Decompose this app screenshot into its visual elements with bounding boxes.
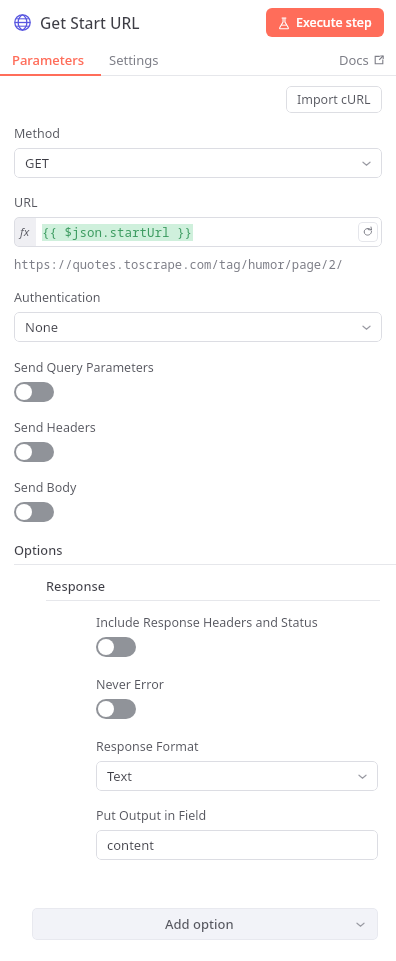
button[interactable]: Never Error — [96, 699, 136, 719]
staticText: Text — [107, 767, 132, 785]
staticText: Response — [46, 577, 105, 594]
staticText: fx — [20, 224, 30, 240]
button[interactable]: fx — [14, 217, 382, 247]
staticText: Include Response Headers and Status — [96, 614, 318, 631]
staticText: Authentication — [14, 289, 101, 306]
button[interactable]: GET — [14, 148, 382, 178]
staticText: Method — [14, 125, 60, 142]
button[interactable]: Docs — [327, 44, 396, 76]
button[interactable]: Text — [96, 761, 378, 791]
staticText: Import cURL — [297, 91, 371, 108]
staticText: Docs — [339, 51, 369, 69]
button[interactable]: Send Headers — [14, 442, 54, 462]
staticText: Put Output in Field — [96, 807, 207, 824]
button[interactable]: content — [96, 830, 378, 860]
staticText: Never Error — [96, 676, 164, 693]
staticText: Settings — [109, 51, 159, 69]
staticText: None — [25, 318, 59, 336]
button[interactable]: Import cURL — [286, 86, 382, 113]
staticText: Get Start URL — [40, 12, 140, 33]
staticText: GET — [25, 154, 49, 172]
staticText: https://quotes.toscrape.com/tag/humor/pa… — [14, 256, 344, 273]
button[interactable]: Execute step — [266, 8, 384, 37]
button[interactable]: Send Body — [14, 502, 54, 522]
staticText: Parameters — [12, 51, 85, 69]
button[interactable]: Include Response Headers and Status — [96, 637, 136, 657]
button[interactable]: Send Query Parameters — [14, 382, 54, 402]
staticText: {{ $json.startUrl }} — [42, 224, 193, 241]
button[interactable]: Settings — [97, 44, 171, 76]
button[interactable]: Parameters — [0, 44, 97, 76]
button[interactable]: None — [14, 312, 382, 342]
staticText: content — [107, 836, 154, 854]
button[interactable]: Add option — [32, 908, 378, 940]
staticText: Send Body — [14, 479, 77, 496]
staticText: Options — [14, 541, 63, 558]
staticText: Send Headers — [14, 419, 96, 436]
button[interactable]: Reset value — [358, 222, 378, 242]
staticText: Add option — [165, 915, 234, 933]
staticText: Send Query Parameters — [14, 359, 154, 376]
staticText: Execute step — [296, 14, 372, 31]
staticText: URL — [14, 194, 38, 211]
staticText: Response Format — [96, 738, 199, 755]
